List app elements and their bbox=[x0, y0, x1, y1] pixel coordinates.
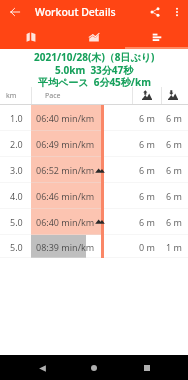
staticText: 6 m bbox=[129, 138, 155, 150]
staticText: Pace bbox=[45, 91, 61, 101]
button[interactable]: Back bbox=[31, 357, 53, 379]
staticText: 5.0km 33分47秒 bbox=[55, 63, 134, 77]
staticText: 08:39 min/km bbox=[36, 241, 95, 253]
button[interactable]: 4.0 bbox=[0, 183, 188, 209]
button[interactable]: More options bbox=[166, 1, 188, 23]
button[interactable]: 1.0 bbox=[0, 105, 188, 131]
button[interactable]: Graph bbox=[62, 24, 125, 49]
staticText: 6 m bbox=[156, 164, 182, 176]
staticText: 0 m bbox=[129, 241, 155, 253]
staticText: 06:40 min/km bbox=[36, 112, 95, 124]
button[interactable]: 3.0 bbox=[0, 157, 188, 183]
button[interactable]: Home bbox=[83, 357, 105, 379]
staticText: 6 m bbox=[156, 112, 182, 124]
staticText: 6 m bbox=[156, 190, 182, 202]
staticText: 06:49 min/km bbox=[36, 138, 95, 150]
staticText: 6 m bbox=[156, 138, 182, 150]
staticText: 5.0 bbox=[10, 241, 23, 253]
button[interactable]: Share bbox=[144, 1, 166, 23]
staticText: 6 m bbox=[129, 216, 155, 228]
staticText: Workout Details bbox=[35, 5, 116, 19]
staticText: 2021/10/28(木)（8日ぶり) bbox=[34, 50, 155, 64]
button[interactable]: Map bbox=[0, 24, 62, 49]
button[interactable]: Splits bbox=[125, 24, 188, 49]
staticText: 4.0 bbox=[10, 190, 23, 202]
staticText: 3.0 bbox=[10, 164, 23, 176]
button[interactable]: Back bbox=[4, 1, 26, 23]
staticText: 06:40 min/km bbox=[36, 216, 95, 228]
staticText: 6 m bbox=[129, 164, 155, 176]
staticText: 平均ペース 6分45秒/km bbox=[38, 75, 151, 89]
staticText: 1.0 bbox=[10, 112, 23, 124]
staticText: 6 m bbox=[129, 190, 155, 202]
staticText: 2.0 bbox=[10, 138, 23, 150]
staticText: 1 m bbox=[156, 241, 182, 253]
staticText: 6 m bbox=[129, 112, 155, 124]
staticText: 06:52 min/km bbox=[36, 164, 95, 176]
staticText: km bbox=[6, 91, 17, 101]
button[interactable]: Recent apps bbox=[136, 357, 158, 379]
staticText: 5.0 bbox=[10, 216, 23, 228]
staticText: 06:46 min/km bbox=[36, 190, 95, 202]
button[interactable]: 5.0 bbox=[0, 235, 188, 258]
button[interactable]: 5.0 bbox=[0, 209, 188, 235]
button[interactable]: 2.0 bbox=[0, 131, 188, 157]
staticText: 6 m bbox=[156, 216, 182, 228]
